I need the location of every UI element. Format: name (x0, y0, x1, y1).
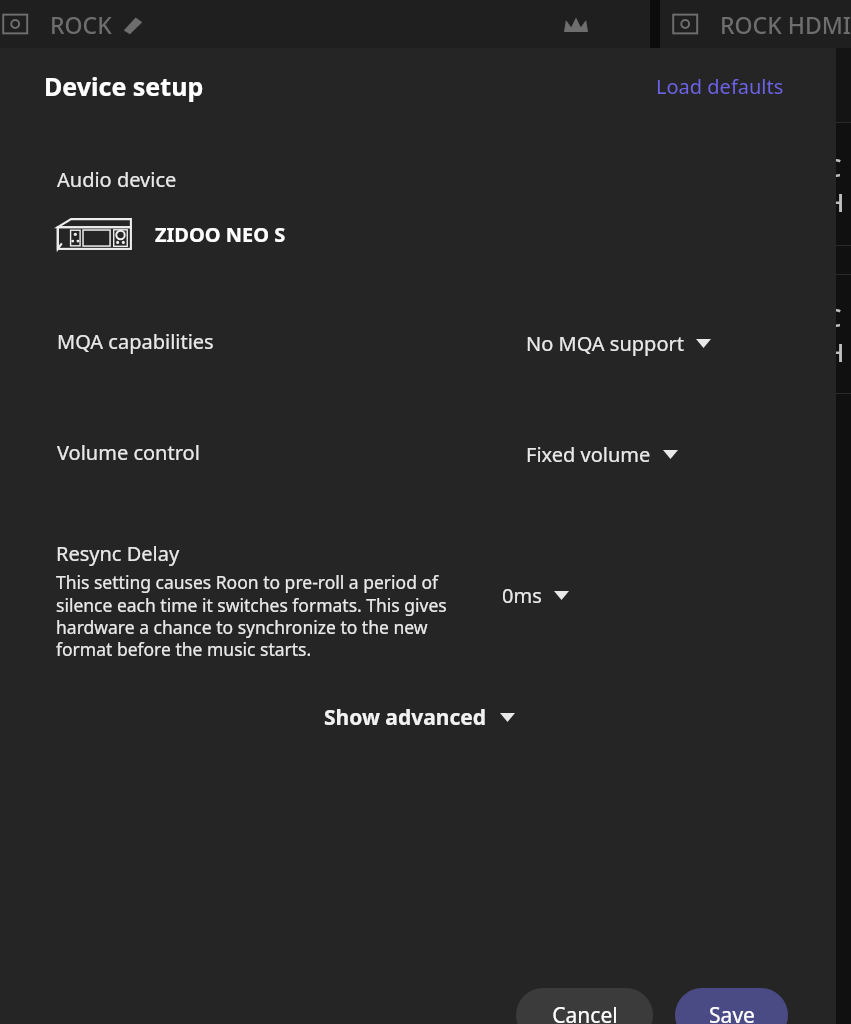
staticText: No MQA support (526, 330, 684, 357)
button[interactable]: Cancel (516, 988, 653, 1024)
staticText: Cancel (552, 1001, 618, 1024)
staticText: Volume control (57, 439, 200, 466)
staticText: ROCK (50, 9, 112, 40)
button[interactable]: Show advanced (318, 699, 521, 736)
button[interactable]: 0ms (500, 578, 571, 613)
staticText: Save (709, 1001, 755, 1024)
other: Expand (663, 450, 678, 459)
other: Expand (696, 339, 711, 348)
staticText: This setting causes Roon to pre-roll a p… (56, 570, 486, 661)
staticText: Fixed volume (526, 441, 651, 468)
button[interactable]: Load defaults (652, 69, 788, 104)
staticText: MQA capabilities (57, 328, 214, 355)
staticText: 0ms (502, 582, 542, 609)
staticText: Load defaults (656, 73, 784, 100)
button[interactable]: Fixed volume (524, 437, 680, 472)
button[interactable]: ZIDOO NEO S (0, 215, 836, 253)
staticText: CH (825, 299, 847, 369)
button[interactable]: No MQA support (524, 326, 713, 361)
staticText: Device setup (44, 69, 204, 103)
other: Expand (500, 713, 515, 722)
staticText: ROCK HDMI (720, 9, 851, 40)
staticText: CH (825, 149, 847, 219)
staticText: Audio device (57, 166, 177, 193)
staticText: ZIDOO NEO S (155, 221, 286, 248)
other: Expand (554, 591, 569, 600)
staticText: Show advanced (324, 703, 487, 732)
staticText: Resync Delay (56, 540, 180, 567)
button[interactable]: Save (675, 988, 788, 1024)
